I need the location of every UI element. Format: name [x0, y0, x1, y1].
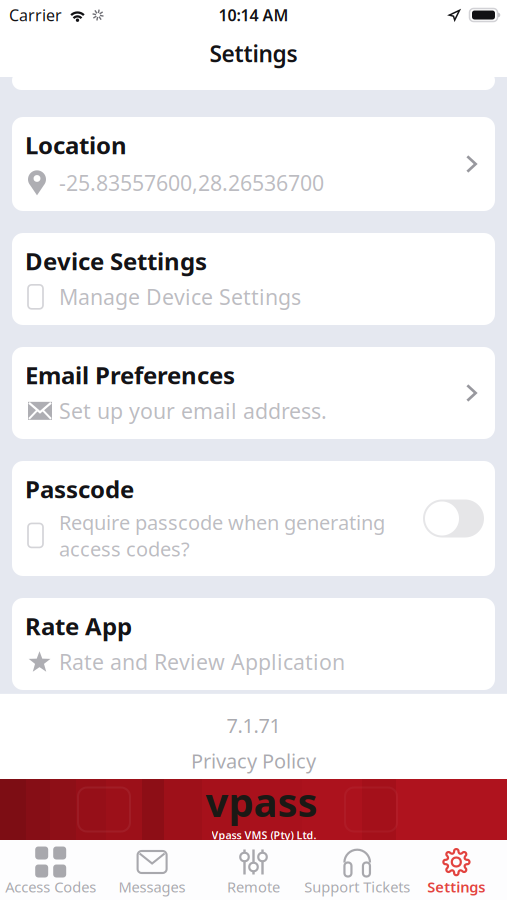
staticText: Rate and Review Application [59, 648, 345, 676]
button[interactable]: Settings [406, 840, 507, 900]
staticText: Rate App [25, 610, 132, 642]
button[interactable]: Location [12, 117, 495, 211]
button[interactable]: Support Tickets [304, 840, 406, 900]
staticText: Set up your email address. [59, 397, 327, 425]
button[interactable]: Access Codes [0, 840, 101, 900]
staticText: Passcode [25, 473, 134, 505]
staticText: Privacy Policy [191, 747, 316, 774]
staticText: Access Codes [5, 877, 96, 896]
button[interactable]: Privacy Policy [191, 747, 316, 774]
staticText: Settings [209, 38, 297, 68]
staticText: Support Tickets [304, 877, 410, 896]
staticText: Device Settings [25, 245, 207, 277]
staticText: Settings [427, 877, 485, 896]
staticText: Manage Device Settings [59, 283, 301, 311]
staticText: -25.83557600,28.26536700 [59, 169, 324, 197]
button[interactable]: Messages [101, 840, 203, 900]
button[interactable]: Passcode [12, 461, 495, 576]
staticText: Location [25, 129, 127, 161]
staticText: 7.1.71 [226, 712, 280, 738]
staticText: Require passcode when generating access … [59, 509, 385, 562]
staticText: Email Preferences [25, 359, 235, 391]
button[interactable]: vpass [0, 779, 507, 840]
staticText: Carrier [9, 4, 62, 26]
button[interactable]: Rate App [12, 598, 495, 690]
button[interactable]: Device Settings [12, 233, 495, 325]
button[interactable]: Email Preferences [12, 347, 495, 439]
staticText: Remote [227, 877, 280, 896]
staticText: vpass [205, 775, 317, 828]
button[interactable]: Remote [203, 840, 304, 900]
staticText: 10:14 AM [218, 4, 288, 26]
staticText: Vpass VMS (Pty) Ltd. [211, 828, 316, 842]
staticText: Messages [119, 877, 186, 896]
